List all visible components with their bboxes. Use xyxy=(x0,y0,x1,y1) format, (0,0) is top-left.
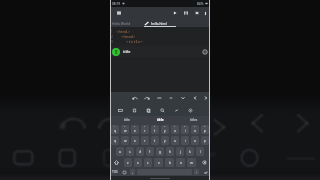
button[interactable]: More options xyxy=(202,10,209,17)
button[interactable]: 9 xyxy=(191,125,199,134)
button[interactable]: Keyboard xyxy=(113,104,127,116)
staticText: o xyxy=(194,129,196,133)
button[interactable]: 4 xyxy=(141,125,149,134)
button[interactable]: E xyxy=(112,46,208,57)
button[interactable]: 2 xyxy=(121,125,129,134)
button[interactable]: Greater than xyxy=(201,92,210,104)
staticText: o xyxy=(194,139,196,143)
button[interactable]: k xyxy=(186,147,194,156)
button[interactable]: Indent xyxy=(153,92,165,104)
button[interactable]: v xyxy=(154,158,163,167)
button[interactable]: hello.html xyxy=(142,19,178,27)
staticText: title xyxy=(124,118,130,122)
button[interactable]: e xyxy=(131,136,139,145)
button[interactable]: r xyxy=(141,136,149,145)
button[interactable]: Expand xyxy=(177,92,189,104)
button[interactable]: y xyxy=(161,136,169,145)
button[interactable]: b xyxy=(165,158,174,167)
button[interactable]: s xyxy=(126,147,134,156)
button[interactable]: 7 xyxy=(171,125,179,134)
staticText: 3 xyxy=(134,125,136,128)
staticText: titles xyxy=(190,118,198,122)
button[interactable]: q xyxy=(111,136,119,145)
staticText: q xyxy=(114,139,116,143)
staticText: e xyxy=(134,129,136,133)
button[interactable]: Documentation xyxy=(202,49,208,55)
button[interactable]: p xyxy=(201,136,209,145)
staticText: r xyxy=(144,139,146,143)
staticText: i xyxy=(185,139,186,143)
staticText: hello.html xyxy=(151,21,167,25)
button[interactable]: a xyxy=(116,147,124,156)
button[interactable]: Undo xyxy=(129,92,141,104)
staticText: title xyxy=(157,118,164,122)
button[interactable]: l xyxy=(196,147,204,156)
staticText: <html> xyxy=(116,29,131,34)
button[interactable]: Shift xyxy=(110,157,123,168)
button[interactable]: titles xyxy=(177,116,210,124)
button[interactable]: n xyxy=(176,158,185,167)
button[interactable]: o xyxy=(191,136,199,145)
button[interactable]: Minus xyxy=(165,92,177,104)
staticText: m xyxy=(190,161,193,165)
button[interactable]: m xyxy=(187,158,196,167)
button[interactable]: z xyxy=(124,158,132,167)
button[interactable]: Emoji xyxy=(120,168,129,176)
button[interactable]: i xyxy=(181,136,189,145)
button[interactable]: j xyxy=(176,147,184,156)
button[interactable]: Link xyxy=(169,104,183,116)
staticText: i xyxy=(185,129,186,133)
staticText: q xyxy=(114,129,116,133)
button[interactable]: Close xyxy=(193,9,201,17)
staticText: j xyxy=(180,150,181,154)
button[interactable]: Run xyxy=(171,9,179,17)
button[interactable]: title xyxy=(144,116,177,124)
staticText: 5 xyxy=(154,125,156,128)
button[interactable]: u xyxy=(171,136,179,145)
button[interactable]: 5 xyxy=(151,125,159,134)
button[interactable]: File xyxy=(127,104,141,116)
staticText: l xyxy=(200,150,201,154)
button[interactable]: Less than xyxy=(189,92,201,104)
button[interactable]: ?123 xyxy=(110,168,120,176)
button[interactable]: , xyxy=(130,169,135,175)
button[interactable]: Hello World xyxy=(112,19,142,27)
button[interactable]: Save xyxy=(182,9,190,17)
button[interactable]: Search xyxy=(155,104,169,116)
staticText: d xyxy=(139,150,141,154)
button[interactable]: d xyxy=(136,147,144,156)
button[interactable]: title xyxy=(110,116,144,124)
staticText: h xyxy=(169,150,171,154)
button[interactable]: 3 xyxy=(131,125,139,134)
button[interactable]: 6 xyxy=(161,125,169,134)
staticText: 2 xyxy=(124,125,126,128)
button[interactable]: 1 xyxy=(111,125,119,134)
staticText: p xyxy=(204,139,206,143)
staticText: 4 xyxy=(144,125,146,128)
button[interactable]: 0 xyxy=(201,125,209,134)
staticText: , xyxy=(132,170,133,174)
button[interactable]: Copy xyxy=(141,104,155,116)
button[interactable]: h xyxy=(166,147,174,156)
button[interactable]: Menu xyxy=(115,9,123,17)
button[interactable]: x xyxy=(134,158,142,167)
staticText: 3 xyxy=(111,40,113,44)
button[interactable]: Settings xyxy=(183,104,197,116)
button[interactable]: w xyxy=(121,136,129,145)
button[interactable]: g xyxy=(156,147,164,156)
button[interactable]: t xyxy=(151,136,159,145)
staticText: w xyxy=(124,139,127,143)
button[interactable]: 8 xyxy=(181,125,189,134)
staticText: v xyxy=(158,161,160,165)
button[interactable]: . xyxy=(194,169,199,175)
staticText: 1 xyxy=(111,30,113,34)
button[interactable]: Redo xyxy=(141,92,153,104)
staticText: z xyxy=(127,161,129,165)
staticText: E xyxy=(115,49,118,56)
button[interactable]: c xyxy=(144,158,152,167)
button[interactable]: f xyxy=(146,147,154,156)
button[interactable]: Backspace xyxy=(197,157,210,168)
staticText: title xyxy=(123,49,131,54)
button[interactable]: Enter xyxy=(200,168,210,176)
